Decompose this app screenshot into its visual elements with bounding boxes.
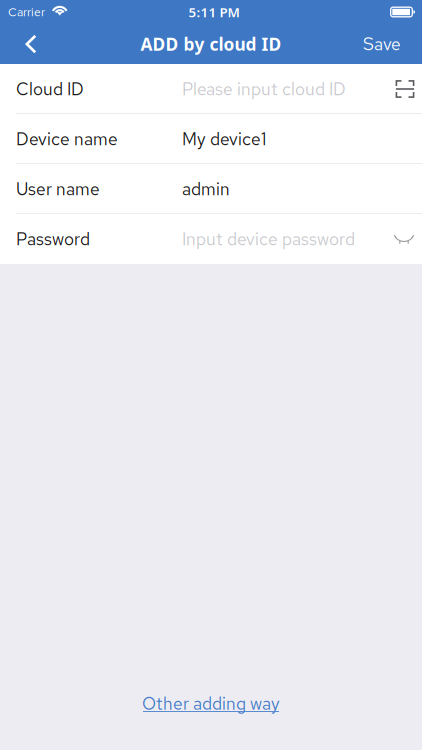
staticText: 5:11 PM (188, 3, 239, 21)
staticText: Other adding way (142, 692, 280, 715)
button[interactable]: Save (348, 24, 416, 64)
staticText: My device1 (182, 127, 266, 150)
staticText: Device name (16, 127, 118, 150)
staticText: Please input cloud ID (182, 77, 346, 100)
button[interactable]: Back (13, 24, 49, 64)
button[interactable]: Other adding way (128, 684, 294, 720)
staticText: Input device password (182, 227, 355, 250)
button[interactable]: Show password (392, 216, 416, 262)
staticText: Cloud ID (16, 77, 84, 100)
staticText: Password (16, 227, 90, 250)
staticText: Carrier (8, 4, 45, 20)
staticText: ADD by cloud ID (140, 32, 281, 56)
staticText: admin (182, 177, 230, 200)
staticText: Save (363, 32, 401, 55)
staticText: User name (16, 177, 100, 200)
button[interactable]: Scan cloud ID (394, 66, 416, 112)
